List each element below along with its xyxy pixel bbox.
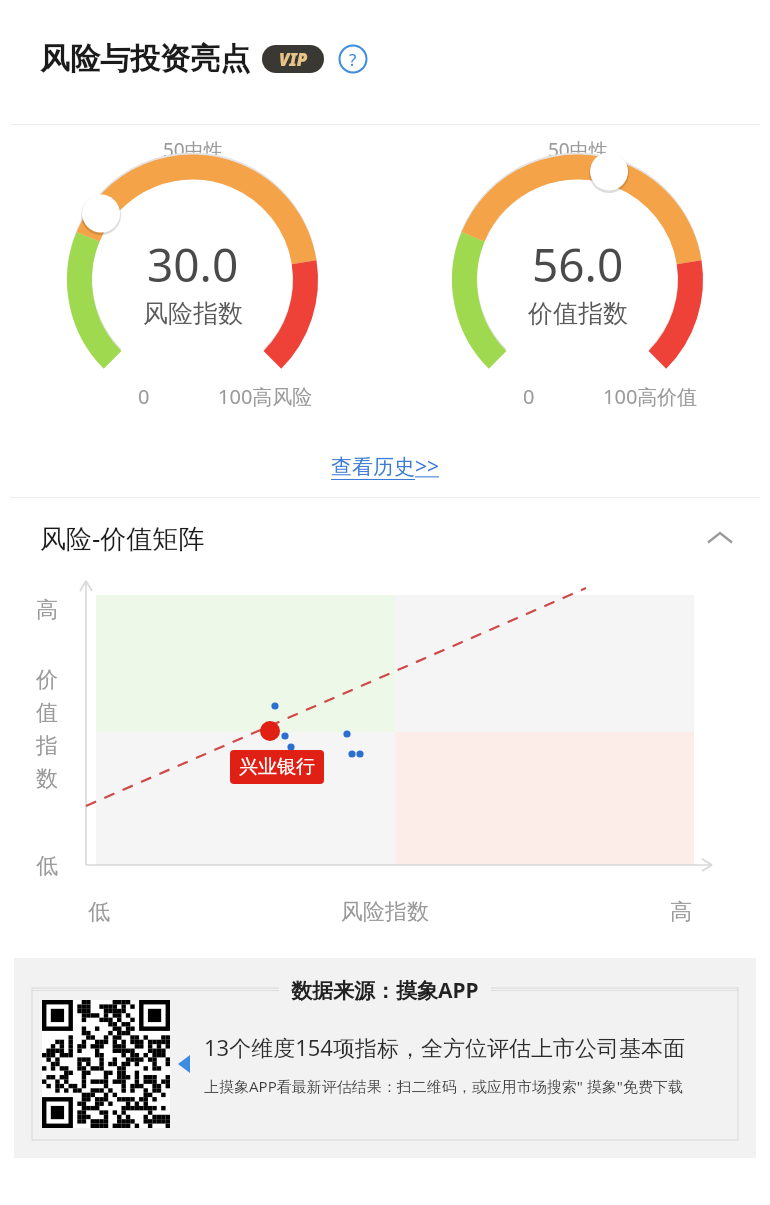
staticText: 30.0	[147, 233, 239, 296]
staticText: 50中性	[163, 137, 223, 163]
staticText: 风险与投资亮点	[40, 40, 250, 78]
staticText: 高	[36, 596, 58, 624]
staticText: 高	[670, 898, 692, 926]
staticText: 风险指数	[341, 898, 429, 926]
staticText: 56.0	[532, 233, 624, 296]
button[interactable]: 查看历史>>	[323, 444, 448, 489]
staticText: 13个维度154项指标，全方位评估上市公司基本面	[204, 1032, 685, 1062]
button[interactable]: 风险-价值矩阵	[40, 498, 734, 578]
button[interactable]: Help	[338, 44, 368, 74]
staticText: 0	[138, 383, 150, 410]
staticText: 数	[36, 765, 58, 793]
staticText: 数据来源：摸象APP	[291, 976, 479, 1005]
staticText: ?	[349, 48, 357, 71]
staticText: 低	[88, 898, 110, 926]
staticText: 上摸象APP看最新评估结果：扫二维码，或应用市场搜索" 摸象"免费下载	[204, 1076, 683, 1096]
staticText: 价值指数	[528, 298, 628, 329]
staticText: 指	[36, 732, 58, 760]
staticText: VIP	[279, 48, 308, 71]
staticText: 值	[36, 699, 58, 727]
staticText: 0	[523, 383, 535, 410]
other: Collapse	[706, 524, 734, 552]
staticText: 低	[36, 852, 58, 880]
button[interactable]: 兴业银行	[230, 750, 324, 784]
staticText: 100高风险	[218, 383, 313, 410]
staticText: 查看历史>>	[331, 452, 440, 481]
staticText: 风险-价值矩阵	[40, 520, 205, 556]
staticText: 100高价值	[603, 383, 698, 410]
button[interactable]: VIP	[262, 45, 324, 73]
staticText: 50中性	[548, 137, 608, 163]
staticText: 风险指数	[143, 298, 243, 329]
staticText: 价	[36, 666, 58, 694]
staticText: 兴业银行	[239, 755, 315, 779]
